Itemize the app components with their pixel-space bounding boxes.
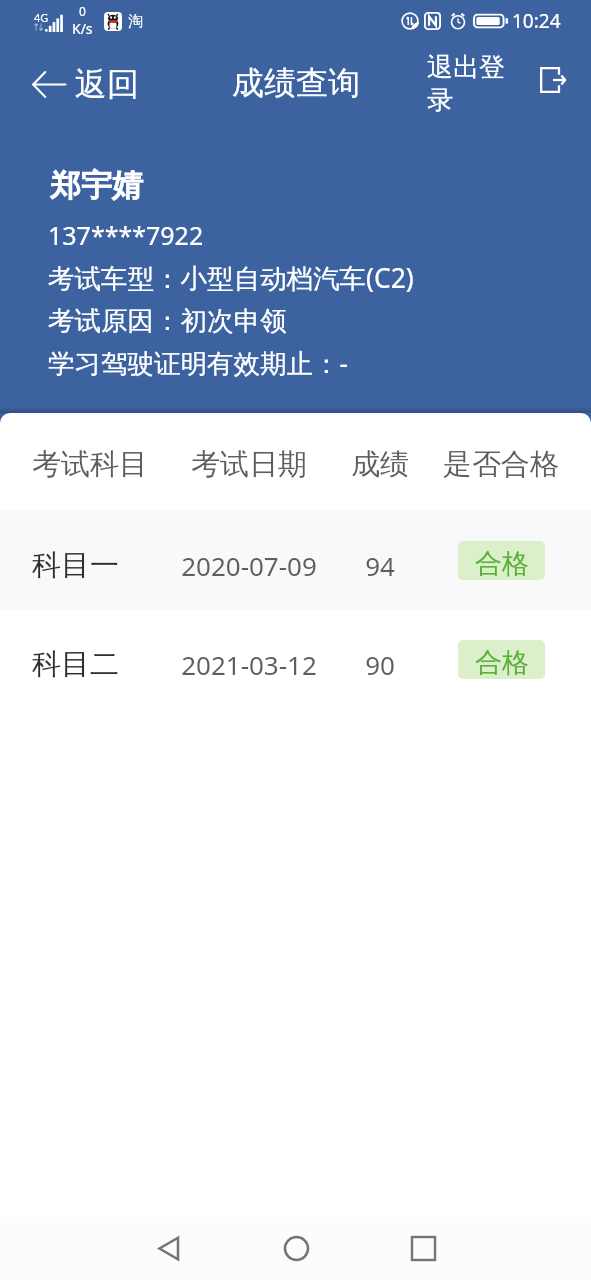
button[interactable]: 科目一 [0, 511, 591, 610]
staticText: 学习驾驶证明有效期止：- [48, 345, 349, 381]
staticText: 4G [34, 10, 49, 25]
staticText: 是否合格 [443, 446, 559, 483]
staticText: 成绩查询 [232, 63, 360, 103]
button[interactable]: Back [137, 1217, 201, 1280]
staticText: 合格 [475, 547, 529, 580]
staticText: 退出登录 [427, 51, 511, 116]
staticText: 淘 [128, 12, 143, 31]
staticText: 科目一 [32, 547, 119, 584]
staticText: 考试车型：小型自动档汽车(C2) [48, 260, 414, 296]
button[interactable]: 退出登录 [534, 61, 572, 99]
button[interactable]: 退出登录 [427, 51, 511, 116]
staticText: 郑宇婧 [50, 166, 143, 205]
button[interactable]: 科目二 [0, 610, 591, 709]
staticText: 考试日期 [191, 446, 307, 483]
staticText: 返回 [75, 64, 139, 104]
button[interactable]: Home [264, 1217, 328, 1280]
staticText: 0 [79, 3, 86, 19]
button[interactable]: 返回 [14, 56, 155, 112]
staticText: 90 [365, 647, 395, 682]
staticText: 2020-07-09 [181, 548, 317, 583]
staticText: 10:24 [512, 8, 561, 34]
staticText: 137****7922 [48, 218, 204, 252]
button[interactable]: Recent apps [391, 1217, 455, 1280]
staticText: 科目二 [32, 646, 119, 683]
staticText: 考试原因：初次申领 [48, 304, 287, 337]
staticText: 94 [365, 548, 395, 583]
staticText: 成绩 [351, 446, 409, 483]
staticText: K/s [72, 19, 93, 38]
staticText: 2021-03-12 [181, 647, 317, 682]
staticText: 合格 [475, 646, 529, 679]
staticText: 考试科目 [32, 446, 148, 483]
